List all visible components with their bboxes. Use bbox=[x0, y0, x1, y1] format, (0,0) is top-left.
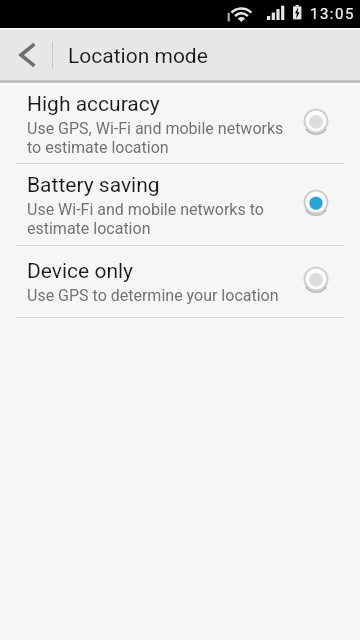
button[interactable]: High accuracy bbox=[0, 85, 360, 163]
button[interactable]: Device only bbox=[0, 247, 360, 317]
staticText: 13:05 bbox=[310, 5, 355, 23]
staticText: Location mode bbox=[68, 44, 208, 69]
button[interactable]: Navigate up bbox=[0, 30, 52, 80]
button[interactable]: Battery saving bbox=[0, 165, 360, 245]
staticText: Device only bbox=[27, 259, 134, 284]
staticText: High accuracy bbox=[27, 92, 160, 117]
staticText: Use GPS to determine your location bbox=[27, 286, 279, 305]
staticText: Battery saving bbox=[27, 173, 160, 198]
staticText: Use Wi-Fi and mobile networks to estimat… bbox=[27, 200, 292, 238]
staticText: Use GPS, Wi-Fi and mobile networks to es… bbox=[27, 119, 292, 157]
